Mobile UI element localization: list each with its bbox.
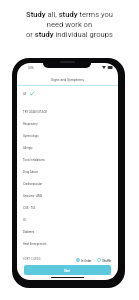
staticText: Toxic Inhalations [23,158,45,161]
button[interactable]: Heat Emergencies [17,237,118,249]
staticText: Signs and Symptoms [51,78,84,82]
staticText: TRY AGAIN STACK [23,110,48,113]
staticText: 3:06 [28,66,34,69]
staticText: Respiratory [23,122,38,125]
button[interactable]: Seizures - AMS [17,189,118,201]
button[interactable]: All [17,86,118,100]
button[interactable]: Allergic [17,141,118,153]
staticText: Heat Emergencies [23,242,47,245]
staticText: GI [23,218,26,221]
button[interactable]: GI [17,213,118,225]
staticText: Cardiovascular [23,182,43,185]
button[interactable]: Diabetes [17,225,118,237]
staticText: SORT CARDS [23,258,41,261]
button[interactable]: Gynecologic [17,129,118,141]
staticText: Drug Abuse [23,170,38,173]
staticText: Study all, study terms you need work on … [26,10,113,38]
button[interactable]: Toxic Inhalations [17,153,118,165]
button[interactable]: Respiratory [17,117,118,129]
button[interactable]: Drug Abuse [17,165,118,177]
staticText: CVA - TIA [23,206,36,209]
button[interactable]: Shuffle [97,258,112,262]
staticText: Allergic [23,146,33,149]
button[interactable]: CVA - TIA [17,201,118,213]
staticText: In Order [81,259,92,262]
staticText: Seizures - AMS [23,194,43,197]
staticText: Gynecologic [23,134,39,137]
button[interactable]: Start [24,265,111,275]
button[interactable]: In Order [76,258,92,262]
staticText: Diabetes [23,230,35,233]
button[interactable]: Cardiovascular [17,177,118,189]
staticText: All [23,92,27,95]
button[interactable]: TRY AGAIN STACK [17,105,118,117]
staticText: Shuffle [102,259,112,262]
staticText: Start [64,269,71,272]
